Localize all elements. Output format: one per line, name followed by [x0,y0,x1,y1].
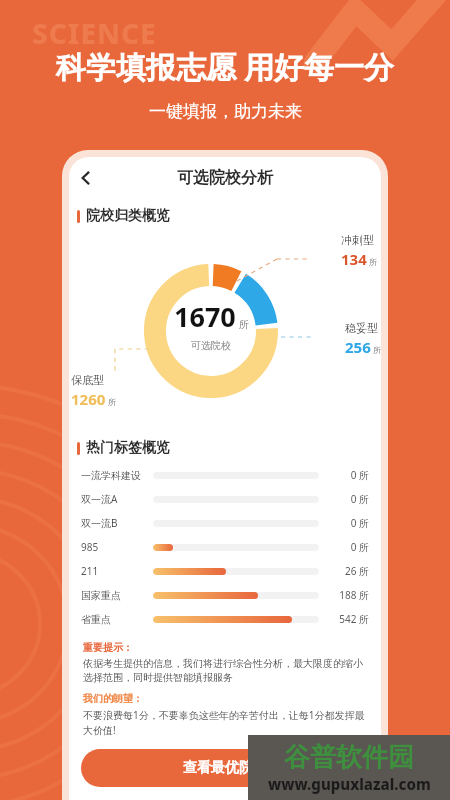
staticText: 依据考生提供的信息，我们将进行综合性分析，最大限度的缩小选择范围，同时提供智能填… [83,657,367,684]
staticText: 科学填报志愿 用好每一分 [56,46,394,87]
staticText: 所 [108,397,116,407]
staticText: 冲刺型 [341,233,374,247]
staticText: 谷普软件园 [284,741,414,774]
staticText: 保底型 [71,373,104,387]
staticText: 26 所 [327,564,369,578]
staticText: 不要浪费每1分，不要辜负这些年的辛苦付出，让每1分都发挥最大价值! [83,708,367,737]
staticText: 0 所 [327,516,369,530]
staticText: 重要提示： [83,641,133,654]
staticText: 所 [239,318,249,331]
staticText: 134 [341,249,367,269]
staticText: 院校归类概览 [86,207,170,225]
staticText: 省重点 [81,613,153,626]
staticText: 热门标签概览 [86,439,170,457]
staticText: 211 [81,564,153,578]
staticText: 双一流A [81,492,153,506]
staticText: 256 [345,337,371,357]
staticText: 可选院校 [191,339,231,352]
staticText: 0 所 [327,540,369,554]
staticText: 所 [369,257,377,267]
staticText: 查看最优院校 [183,759,267,777]
staticText: 所 [373,345,381,355]
staticText: 双一流B [81,516,153,530]
staticText: 可选院校分析 [177,168,273,188]
staticText: 一流学科建设 [81,469,153,482]
staticText: www.gupuxlazal.com [268,774,431,794]
staticText: 1260 [71,389,106,409]
staticText: 0 所 [327,468,369,482]
staticText: 542 所 [327,612,369,626]
staticText: 我们的朗望： [83,692,143,705]
staticText: 稳妥型 [345,321,378,335]
button[interactable]: 查看最优院校 [81,749,369,787]
staticText: SCIENCE [32,14,157,52]
staticText: 1670 [174,298,236,335]
staticText: 0 所 [327,492,369,506]
staticText: 188 所 [327,588,369,602]
button[interactable]: Back [69,161,103,195]
staticText: 一键填报，助力未来 [149,101,302,122]
staticText: 国家重点 [81,589,153,602]
staticText: 985 [81,540,153,554]
